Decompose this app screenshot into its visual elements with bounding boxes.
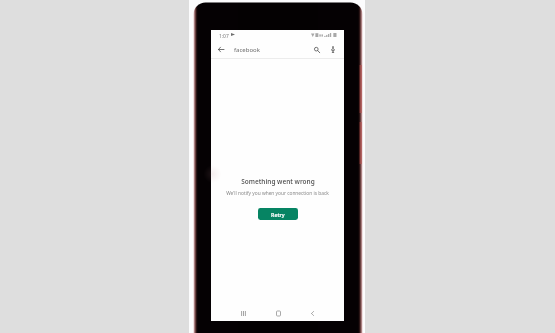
staticText: Retry	[271, 211, 285, 218]
button[interactable]: Voice search	[326, 43, 339, 56]
button[interactable]: Search	[310, 43, 323, 56]
button[interactable]: Home	[271, 306, 285, 320]
staticText: facebook	[234, 46, 260, 54]
button[interactable]: Back	[305, 306, 319, 320]
staticText: We'll notify you when your connection is…	[226, 190, 329, 197]
button[interactable]: Recent apps	[236, 306, 250, 320]
button[interactable]: Back	[214, 43, 227, 56]
staticText: 1:07	[219, 33, 229, 40]
staticText: Something went wrong	[241, 177, 315, 186]
button[interactable]: Retry	[258, 208, 298, 220]
